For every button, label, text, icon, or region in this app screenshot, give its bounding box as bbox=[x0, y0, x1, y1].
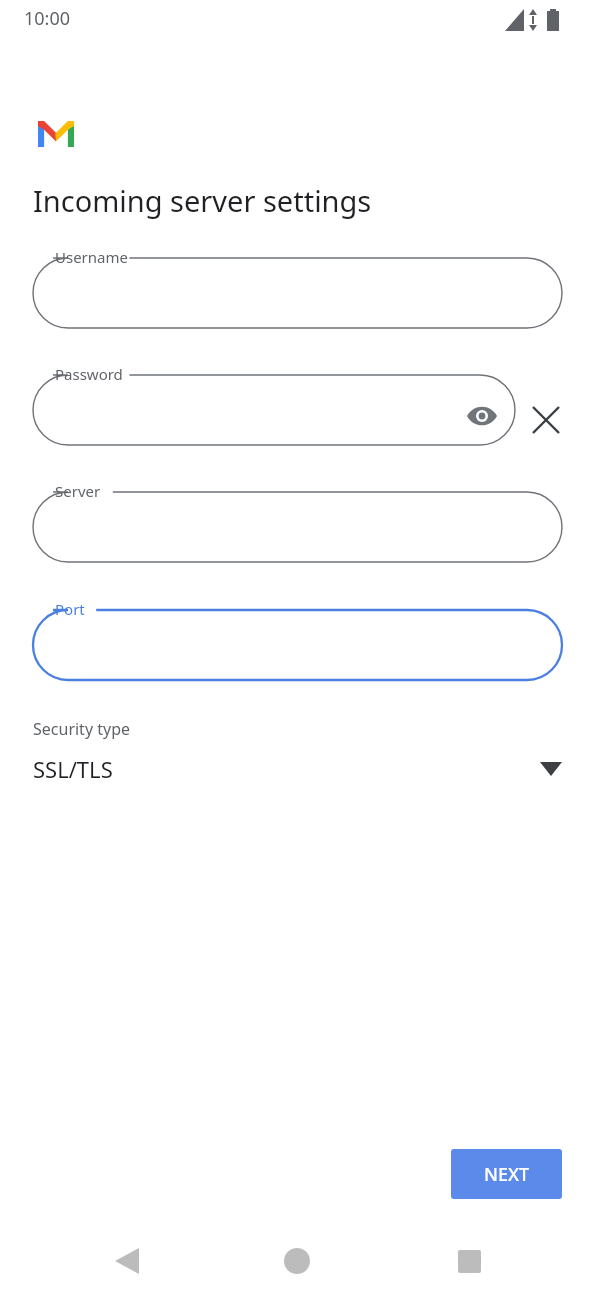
button[interactable]: Back bbox=[98, 1232, 156, 1290]
staticText: Security type bbox=[33, 718, 131, 740]
button[interactable] bbox=[33, 610, 562, 680]
button[interactable]: Home bbox=[268, 1232, 326, 1290]
staticText: Password bbox=[55, 364, 123, 384]
button[interactable]: Recents bbox=[440, 1232, 498, 1290]
button[interactable] bbox=[33, 375, 515, 445]
staticText: 10:00 bbox=[24, 6, 71, 31]
staticText: SSL/TLS bbox=[33, 754, 113, 784]
button[interactable]: SSL/TLS bbox=[33, 748, 562, 790]
button[interactable]: Show password bbox=[458, 392, 506, 440]
staticText: Incoming server settings bbox=[33, 181, 372, 220]
staticText: NEXT bbox=[484, 1162, 530, 1187]
staticText: Port bbox=[55, 599, 85, 619]
button[interactable] bbox=[33, 258, 562, 328]
button[interactable]: NEXT bbox=[451, 1149, 562, 1199]
button[interactable]: Clear password bbox=[522, 396, 570, 444]
button[interactable] bbox=[33, 492, 562, 562]
staticText: Server bbox=[55, 481, 101, 501]
staticText: Username bbox=[55, 247, 128, 267]
